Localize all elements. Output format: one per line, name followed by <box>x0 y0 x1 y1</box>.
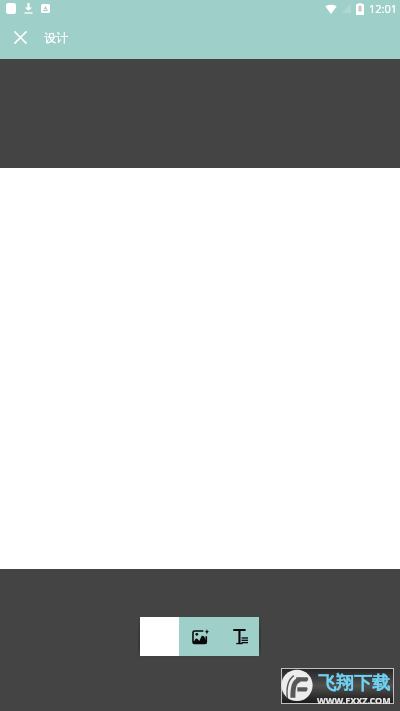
button[interactable]: Close <box>0 23 41 51</box>
staticText: WWW.FXXZ.COM <box>317 694 391 706</box>
button[interactable]: Insert text <box>219 617 259 656</box>
staticText: 12:01 <box>369 1 398 16</box>
button[interactable]: Insert image <box>179 617 219 656</box>
staticText: 飞翔下载 <box>318 672 390 695</box>
staticText: 设计 <box>44 30 68 45</box>
